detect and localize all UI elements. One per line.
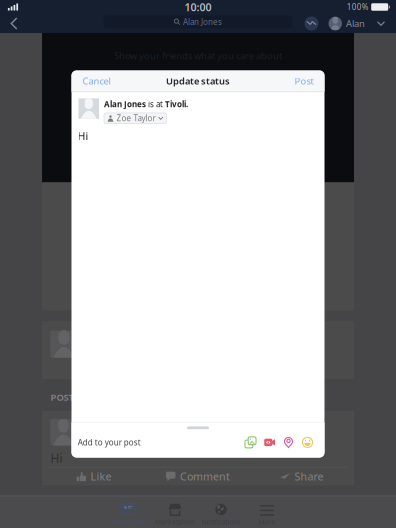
staticText: Post [294,75,313,87]
button[interactable]: More [244,496,290,528]
staticText: Zoe Taylor [116,113,155,123]
staticText: Comment [180,469,230,483]
staticText: Hi [50,450,62,466]
staticText: More [258,517,275,526]
button[interactable]: Messenger [304,16,318,30]
staticText: Share [294,469,323,483]
button[interactable]: Comment [146,467,250,485]
staticText: Hi [77,129,88,143]
staticText: Like [90,469,111,483]
button[interactable]: Check in [279,435,298,450]
button[interactable]: Alan Jones [104,15,293,28]
button[interactable]: News Feed [106,496,152,528]
staticText: Tivoli. [165,99,188,109]
button[interactable]: Back [0,14,28,33]
staticText: Update status [166,75,230,87]
staticText: Show your friends what you care about [114,49,282,62]
staticText: 100% [347,2,369,12]
button[interactable]: Like [42,467,146,485]
button[interactable]: Photo [241,435,260,450]
button[interactable]: Marketplace [152,496,198,528]
staticText: Notifications [201,517,240,526]
staticText: Cancel [82,75,110,87]
staticText: Add to your post [78,437,141,448]
staticText: is at [146,99,165,109]
button[interactable]: Notifications [198,496,244,528]
staticText: Alan [346,17,365,30]
button[interactable]: Feeling [298,435,317,450]
staticText: 10:00 [184,0,211,14]
staticText: POSTS [50,391,78,403]
button[interactable]: Video [260,435,279,450]
button[interactable]: Alan [328,17,365,30]
staticText: Marketplace [155,517,195,526]
button[interactable]: Account menu [374,16,388,30]
staticText: Alan Jones [183,16,222,27]
button[interactable]: Share [250,467,354,485]
staticText: Alan Jones [104,99,146,109]
button[interactable]: Cancel [71,70,121,91]
button[interactable]: Post [283,70,324,91]
staticText: News Feed [112,517,146,526]
